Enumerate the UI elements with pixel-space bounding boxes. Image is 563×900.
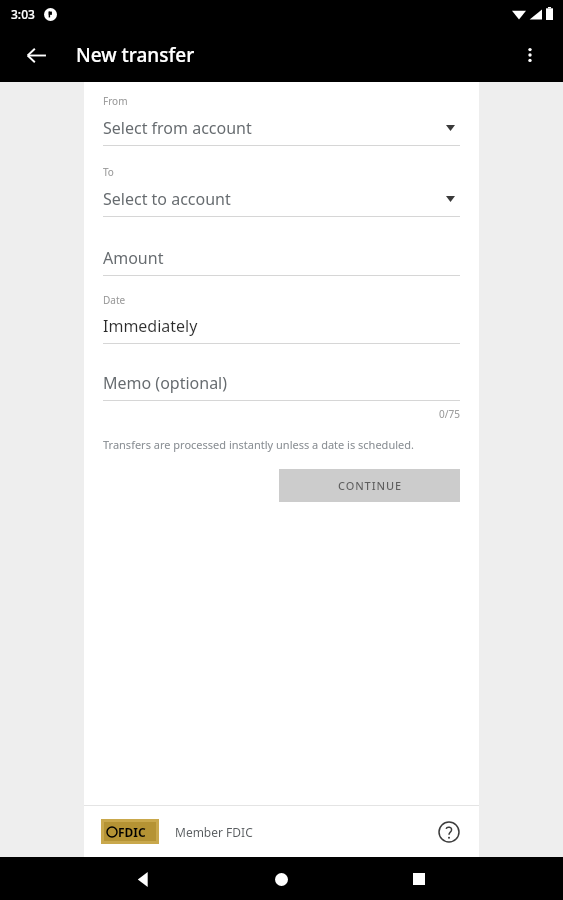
staticText: CONTINUE	[338, 478, 402, 493]
button[interactable]: Memo (optional)	[103, 372, 460, 401]
staticText: Select to account	[103, 188, 231, 210]
staticText: New transfer	[76, 42, 195, 68]
staticText: Member FDIC	[175, 824, 253, 840]
staticText: 0/75	[103, 407, 460, 421]
staticText: Immediately	[103, 315, 198, 337]
button[interactable]: Date	[103, 293, 460, 344]
staticText: Date	[103, 293, 126, 307]
button[interactable]: Back	[126, 862, 160, 896]
staticText: 3:03	[11, 6, 35, 22]
button[interactable]: Help	[434, 817, 464, 847]
button[interactable]: From	[103, 94, 460, 146]
staticText: Memo (optional)	[103, 372, 228, 394]
button[interactable]: More options	[511, 36, 549, 74]
staticText: Select from account	[103, 117, 252, 139]
staticText: To	[103, 165, 114, 179]
button[interactable]: Amount	[103, 247, 460, 276]
staticText: Amount	[103, 247, 164, 269]
staticText: From	[103, 94, 128, 108]
staticText: FDIC	[118, 824, 146, 840]
button[interactable]: To	[103, 165, 460, 217]
button[interactable]: CONTINUE	[279, 469, 460, 502]
button[interactable]: Back	[18, 37, 54, 73]
button[interactable]: Recent apps	[402, 862, 436, 896]
button[interactable]: Home	[264, 862, 298, 896]
staticText: Transfers are processed instantly unless…	[103, 437, 414, 452]
